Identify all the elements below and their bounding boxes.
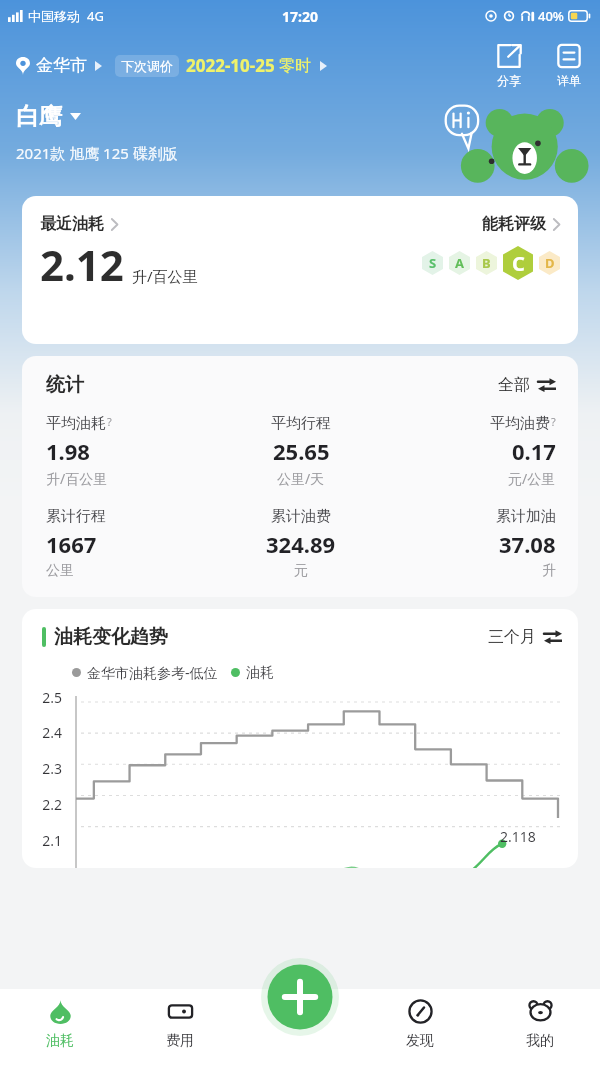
staticText: 元/公里 bbox=[508, 469, 556, 488]
staticText: 升/百公里 bbox=[46, 469, 108, 488]
staticText: 40% bbox=[538, 7, 564, 25]
button[interactable]: 油耗 bbox=[0, 998, 120, 1050]
staticText: 累计加油 bbox=[496, 507, 556, 526]
staticText: 发现 bbox=[406, 1032, 434, 1050]
staticText: 累计行程 bbox=[46, 507, 106, 526]
staticText: 详单 bbox=[557, 73, 581, 88]
staticText: 2022-10-25 bbox=[186, 54, 275, 77]
staticText: A bbox=[455, 254, 464, 272]
button[interactable]: 能耗评级 bbox=[422, 214, 560, 280]
staticText: 油耗变化趋势 bbox=[54, 625, 168, 649]
staticText: ? bbox=[107, 414, 112, 429]
staticText: 分享 bbox=[497, 73, 521, 88]
staticText: 324.89 bbox=[266, 529, 336, 559]
staticText: 元 bbox=[294, 562, 308, 580]
staticText: 2.118 bbox=[500, 827, 536, 846]
staticText: 最近油耗 bbox=[40, 214, 104, 234]
button[interactable]: 我的 bbox=[480, 998, 600, 1050]
staticText: 2021款 旭鹰 125 碟刹版 bbox=[16, 143, 178, 163]
staticText: 累计油费 bbox=[271, 507, 331, 526]
staticText: 升/百公里 bbox=[132, 266, 198, 286]
staticText: D bbox=[545, 254, 555, 272]
staticText: 2.12 bbox=[40, 236, 124, 293]
button[interactable]: 最近油耗 bbox=[40, 214, 422, 293]
staticText: B bbox=[482, 254, 491, 272]
staticText: 零时 bbox=[279, 56, 311, 76]
staticText: 2.3 bbox=[42, 759, 62, 778]
button[interactable]: 详单 bbox=[551, 41, 587, 90]
staticText: 油耗 bbox=[246, 664, 274, 682]
staticText: 费用 bbox=[166, 1032, 194, 1050]
staticText: 2.2 bbox=[42, 795, 62, 814]
button[interactable]: 金华市 bbox=[16, 55, 102, 76]
staticText: 升 bbox=[542, 562, 556, 580]
staticText: 37.08 bbox=[499, 529, 556, 559]
staticText: 中国移动 bbox=[28, 8, 80, 24]
staticText: 全部 bbox=[498, 375, 530, 395]
staticText: 金华市 bbox=[36, 55, 87, 76]
staticText: 2.5 bbox=[42, 688, 62, 706]
staticText: 平均油费 bbox=[490, 414, 550, 433]
staticText: 2.4 bbox=[42, 723, 62, 742]
staticText: S bbox=[429, 254, 437, 272]
staticText: 17:20 bbox=[282, 7, 318, 26]
staticText: 金华市油耗参考-低位 bbox=[87, 663, 218, 682]
staticText: 油耗 bbox=[46, 1032, 74, 1050]
staticText: 1.98 bbox=[46, 436, 90, 466]
staticText: 2.1 bbox=[42, 831, 62, 850]
button[interactable]: 费用 bbox=[120, 998, 240, 1050]
staticText: 我的 bbox=[526, 1032, 554, 1050]
staticText: ? bbox=[551, 414, 556, 429]
staticText: 公里/天 bbox=[277, 469, 325, 488]
staticText: 能耗评级 bbox=[482, 214, 546, 234]
staticText: 1667 bbox=[46, 529, 97, 559]
staticText: 白鹰 bbox=[16, 102, 62, 131]
staticText: 4G bbox=[87, 7, 104, 25]
staticText: 统计 bbox=[46, 373, 84, 397]
staticText: 三个月 bbox=[488, 627, 536, 647]
button[interactable]: 全部 bbox=[498, 375, 556, 395]
button[interactable]: 三个月 bbox=[488, 627, 562, 647]
button[interactable]: 白鹰 bbox=[16, 102, 81, 131]
staticText: 平均行程 bbox=[271, 414, 331, 433]
staticText: 0.17 bbox=[512, 436, 556, 466]
staticText: C bbox=[512, 250, 525, 277]
button[interactable]: 分享 bbox=[491, 41, 527, 90]
button[interactable]: 添加记录 bbox=[261, 958, 339, 1036]
button[interactable]: 下次调价 bbox=[115, 54, 327, 77]
staticText: 下次调价 bbox=[121, 58, 173, 74]
staticText: 平均油耗 bbox=[46, 414, 106, 433]
staticText: 25.65 bbox=[273, 436, 330, 466]
staticText: 公里 bbox=[46, 562, 74, 580]
button[interactable]: 发现 bbox=[360, 998, 480, 1050]
